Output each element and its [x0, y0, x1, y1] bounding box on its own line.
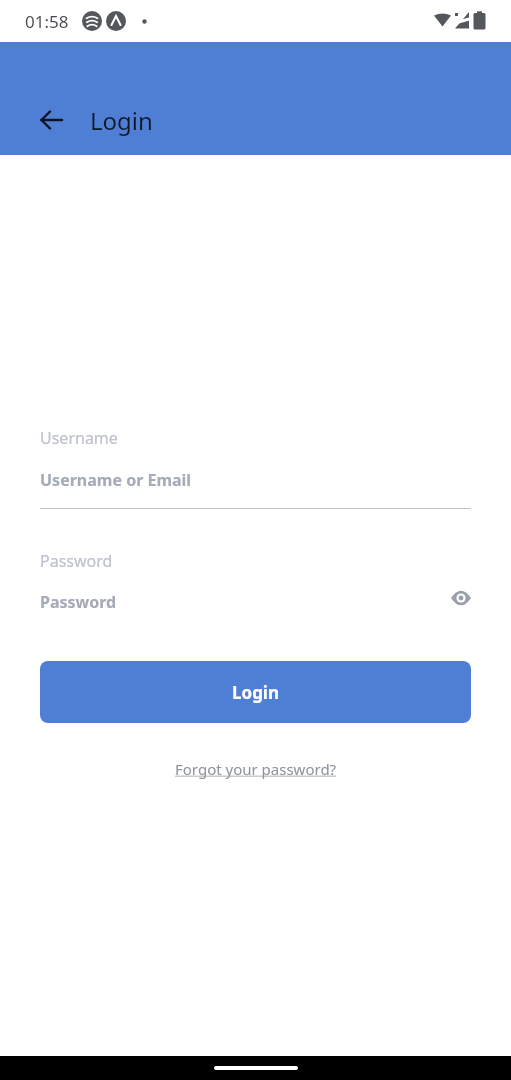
staticText: Password	[40, 550, 113, 572]
button[interactable]: Username or Email	[40, 469, 471, 491]
staticText: Forgot your password?	[175, 759, 337, 779]
staticText: Username or Email	[40, 469, 192, 491]
staticText: 01:58	[25, 10, 69, 33]
staticText: Password	[40, 591, 117, 613]
staticText: Login	[232, 681, 280, 704]
staticText: Username	[40, 427, 118, 449]
button[interactable]: Forgot your password?	[175, 759, 337, 779]
button[interactable]	[32, 100, 72, 140]
staticText: Login	[90, 104, 153, 137]
button[interactable]: Login	[40, 661, 471, 723]
button[interactable]: Password	[40, 591, 471, 613]
